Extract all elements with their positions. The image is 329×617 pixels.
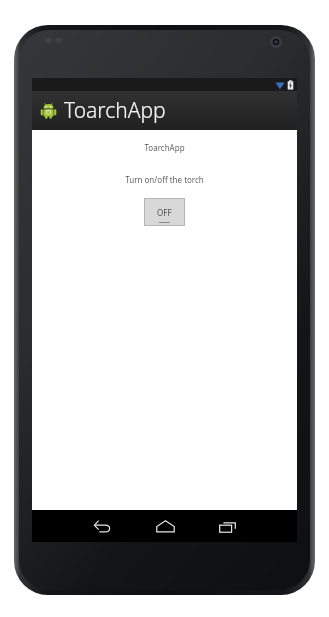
button[interactable]: Back: [72, 510, 134, 542]
staticText: ToarchApp: [64, 96, 166, 125]
staticText: OFF: [157, 207, 172, 218]
button[interactable]: Home: [134, 510, 196, 542]
button[interactable]: OFF: [144, 198, 185, 226]
staticText: ToarchApp: [144, 142, 185, 153]
button[interactable]: Recent apps: [196, 510, 258, 542]
staticText: Turn on/off the torch: [125, 174, 204, 185]
